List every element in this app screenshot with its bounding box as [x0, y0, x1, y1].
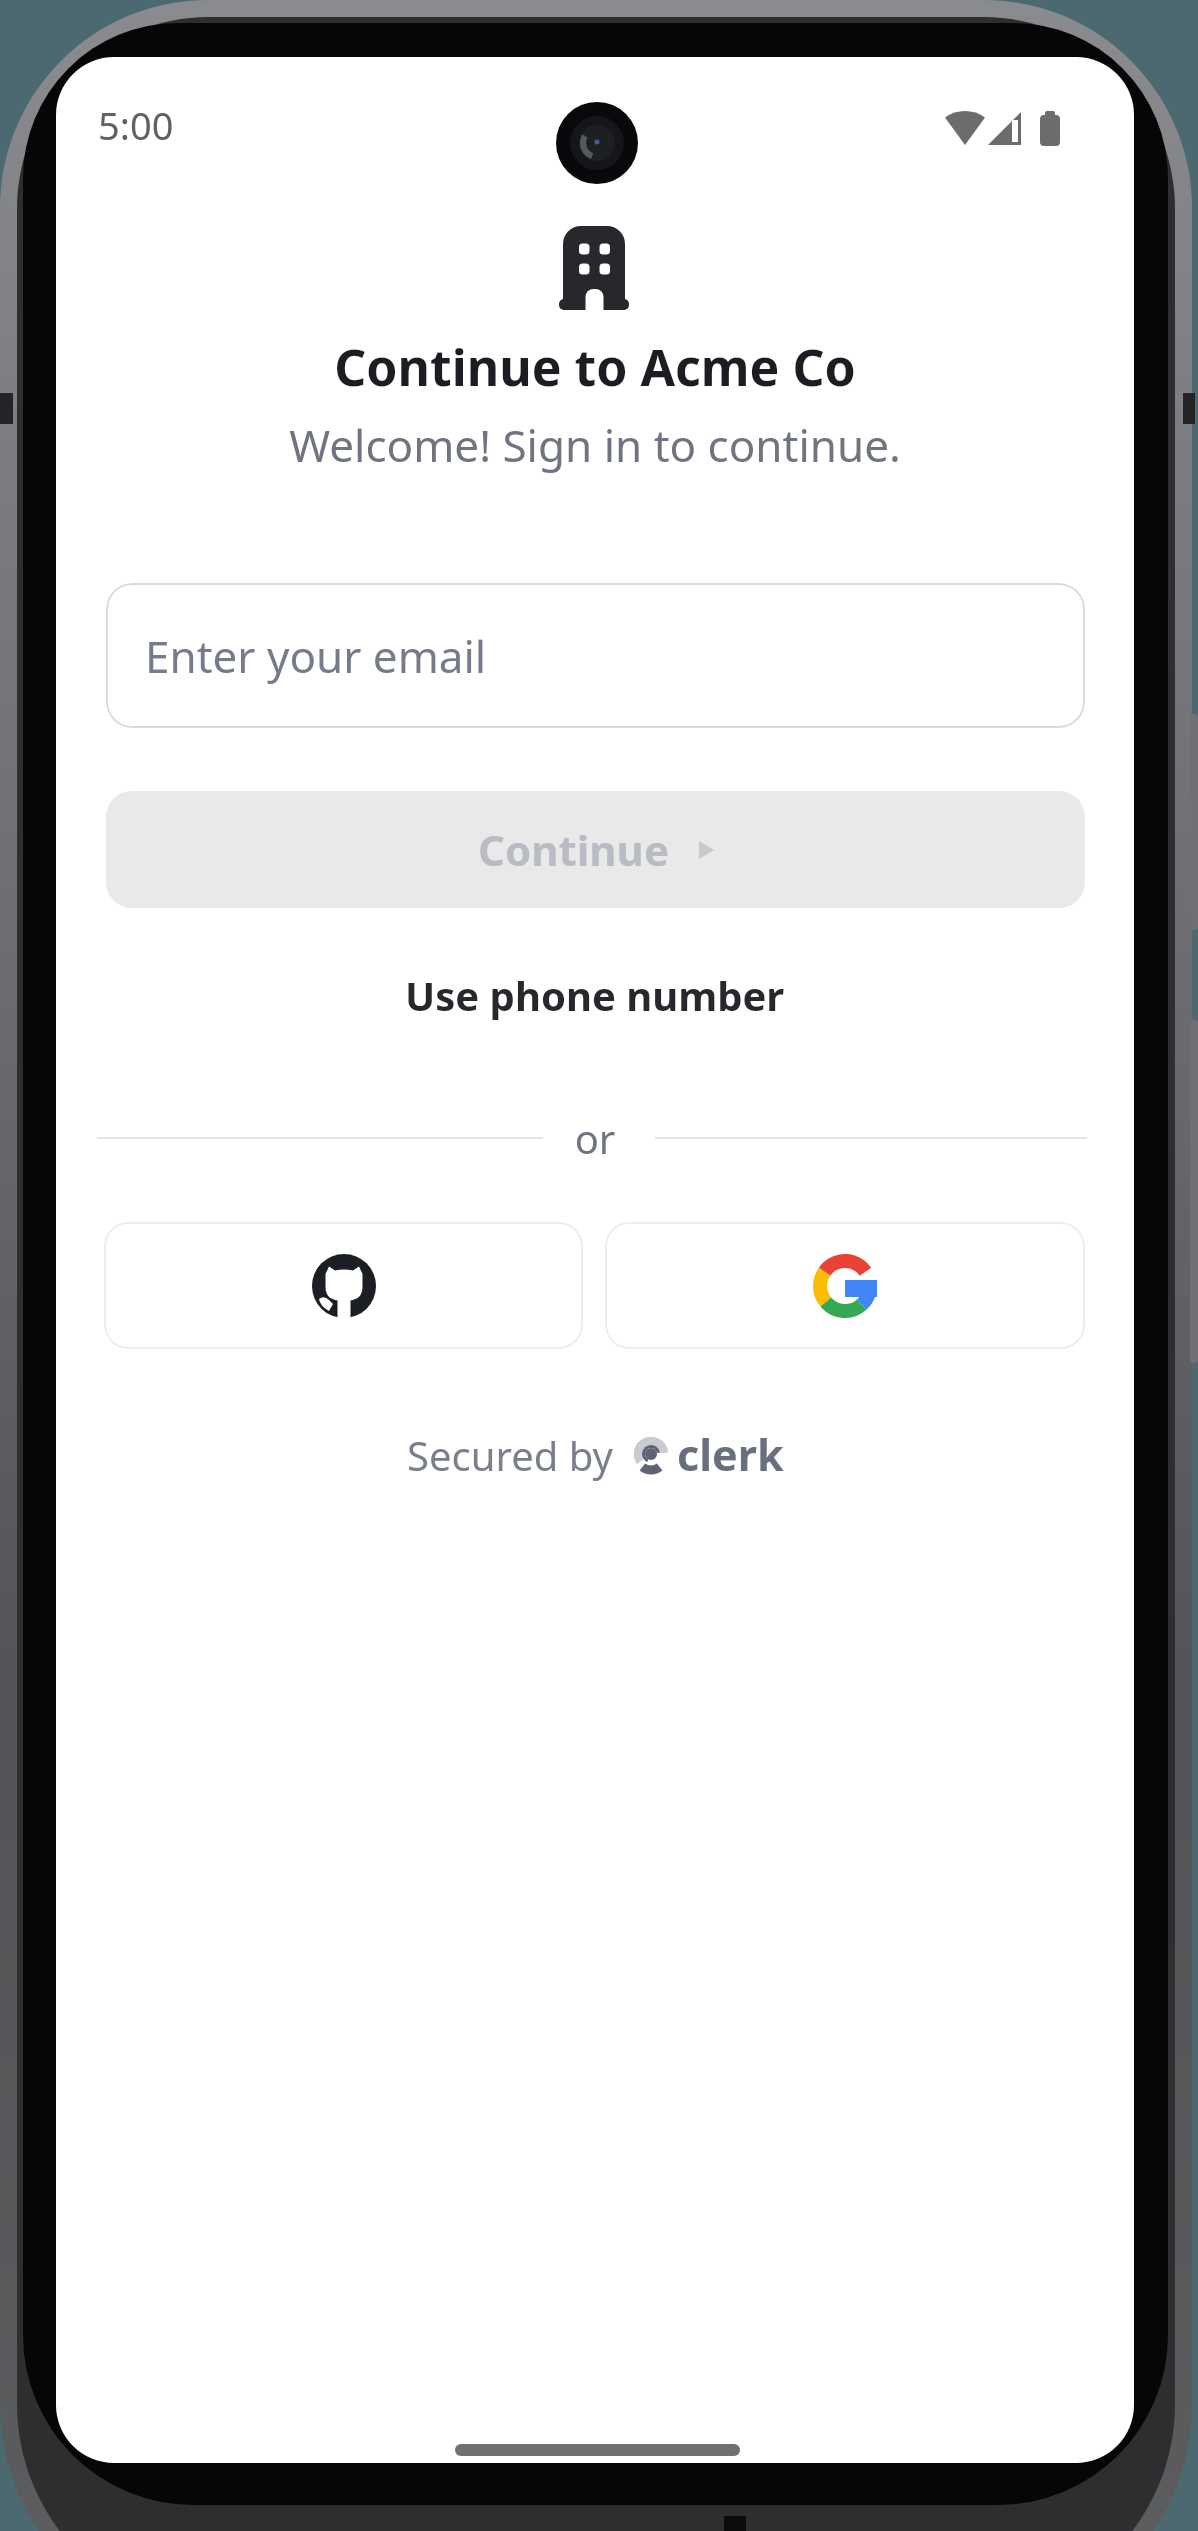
staticText: Continue	[478, 821, 669, 878]
button[interactable]: Use phone number	[295, 950, 895, 1040]
button[interactable]: Enter your email	[106, 583, 1085, 728]
button[interactable]: Continue	[106, 791, 1085, 908]
button[interactable]	[605, 1222, 1085, 1349]
staticText: Continue to Acme Co	[56, 333, 1134, 401]
staticText: Welcome! Sign in to continue.	[56, 415, 1134, 475]
staticText: Enter your email	[145, 626, 487, 686]
staticText: 5:00	[98, 99, 174, 151]
staticText: clerk	[677, 1425, 784, 1484]
button[interactable]	[104, 1222, 583, 1349]
staticText: or	[56, 1111, 1134, 1165]
staticText: Secured by	[407, 1428, 613, 1482]
staticText: Use phone number	[405, 968, 785, 1022]
